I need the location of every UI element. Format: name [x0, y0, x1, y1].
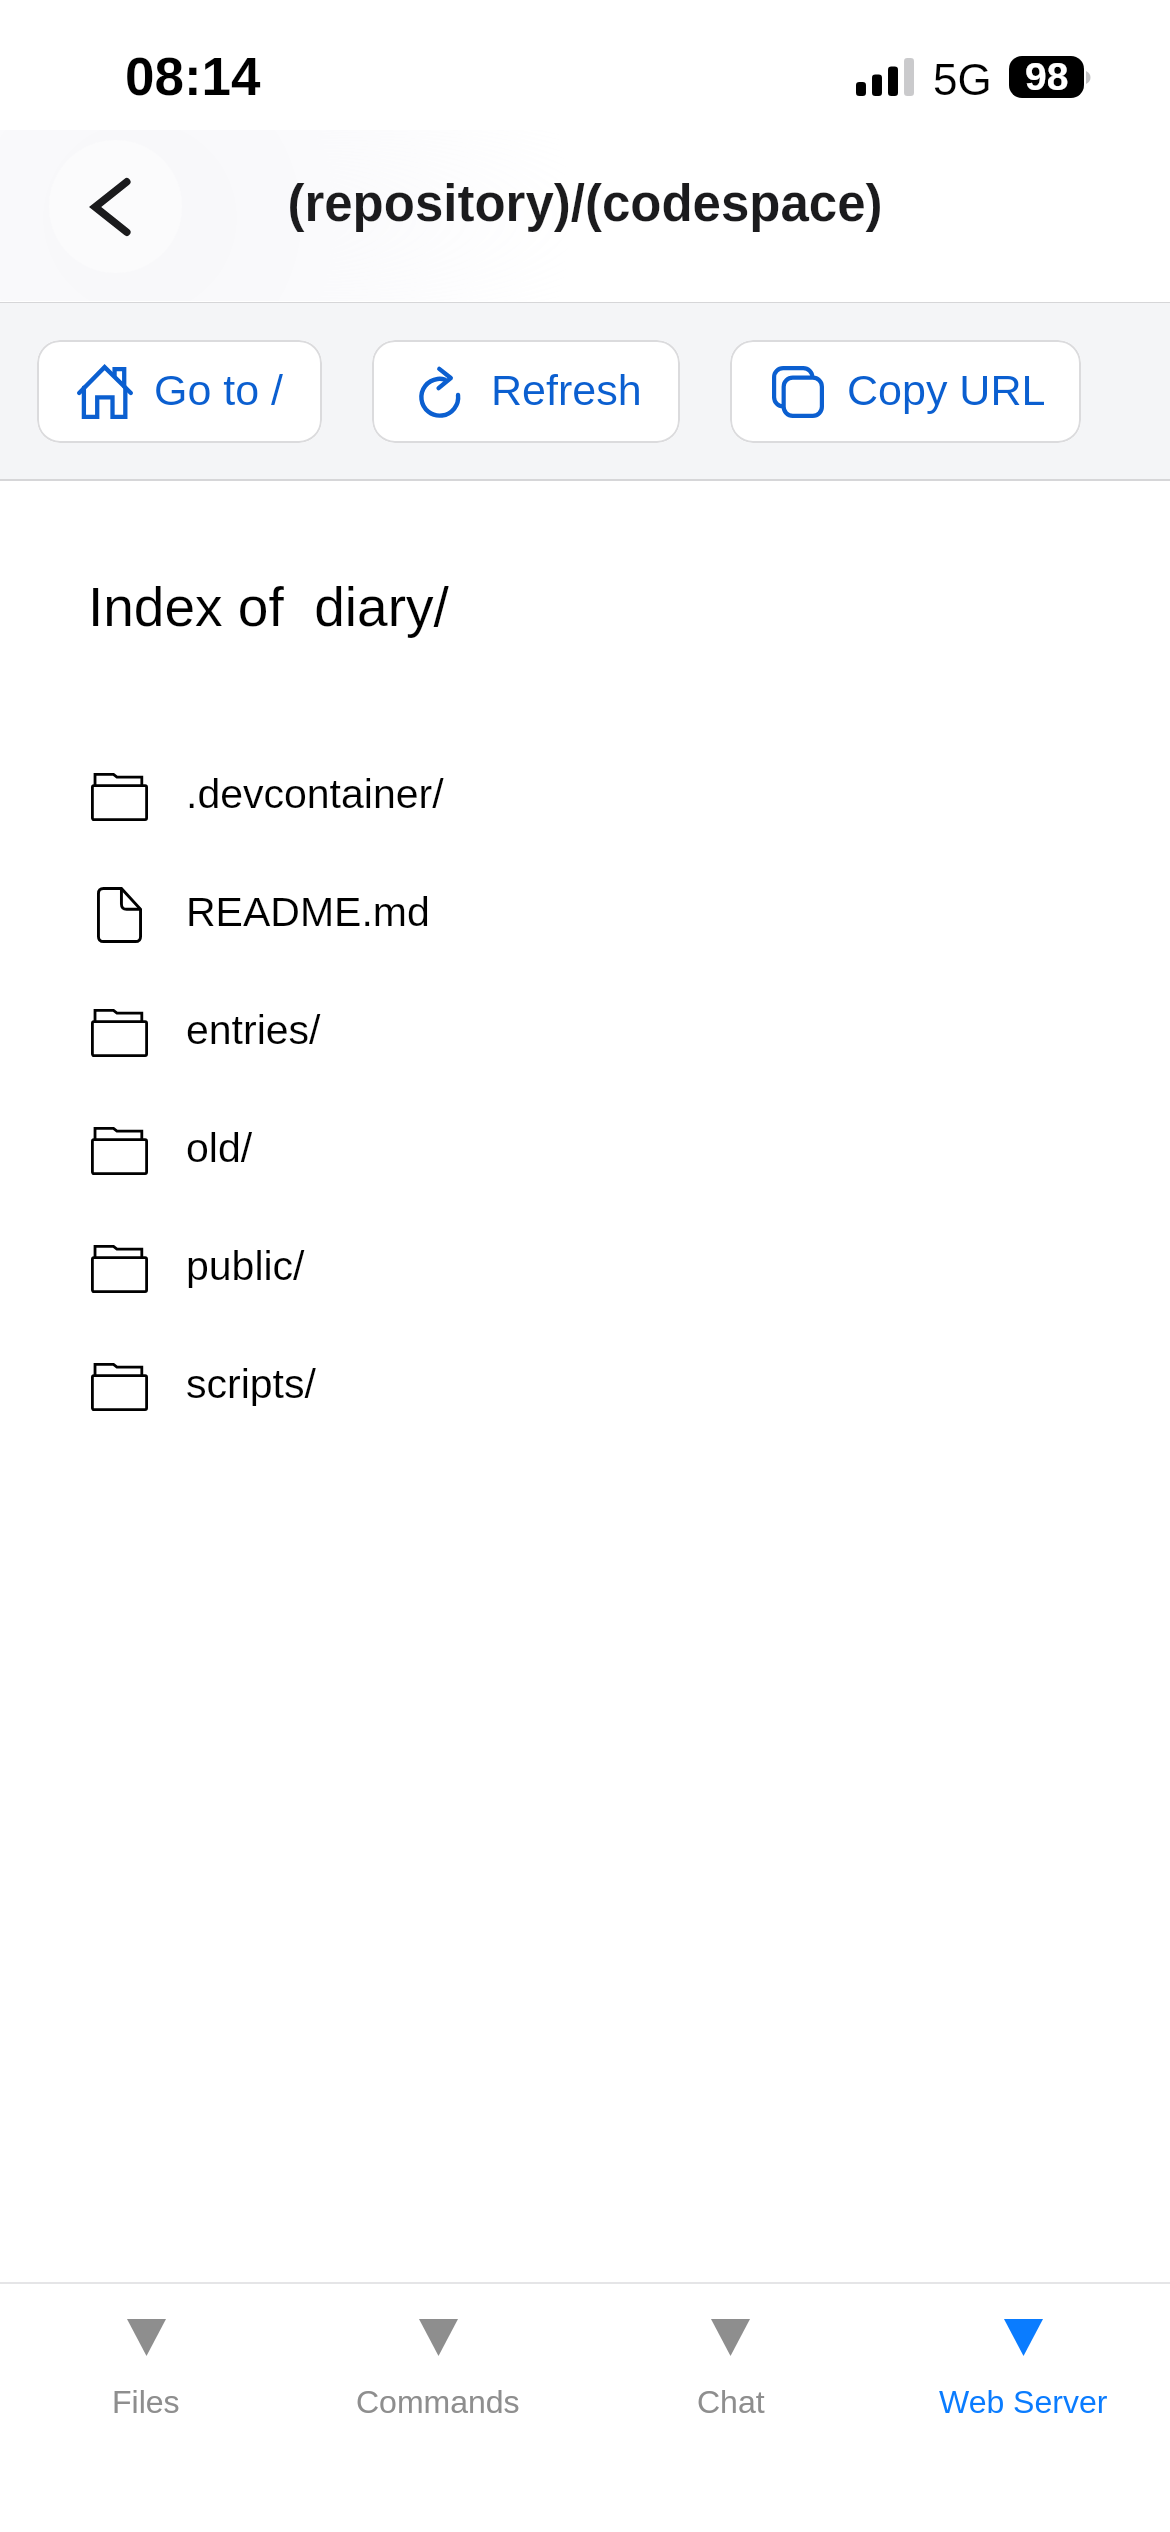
staticText: README.md [186, 889, 430, 935]
staticText: Index of diary/ [88, 576, 449, 637]
button[interactable]: entries/ [0, 974, 1170, 1092]
button[interactable]: scripts/ [0, 1328, 1170, 1446]
staticText: Go to / [154, 366, 284, 414]
staticText: Files [112, 2384, 180, 2420]
button[interactable]: old/ [0, 1092, 1170, 1210]
button[interactable]: Chat [584, 2284, 877, 2420]
button[interactable]: .devcontainer/ [0, 738, 1170, 856]
button[interactable]: Go to / [37, 340, 322, 443]
staticText: Refresh [491, 366, 642, 414]
staticText: public/ [186, 1243, 305, 1289]
staticText: .devcontainer/ [186, 771, 444, 817]
button[interactable]: Web Server [877, 2284, 1170, 2420]
button[interactable]: public/ [0, 1210, 1170, 1328]
staticText: Chat [697, 2384, 765, 2420]
staticText: scripts/ [186, 1361, 316, 1407]
button[interactable]: README.md [0, 856, 1170, 974]
staticText: Web Server [939, 2384, 1108, 2420]
staticText: 08:14 [125, 47, 261, 106]
button[interactable]: Files [0, 2284, 292, 2420]
button[interactable]: Refresh [372, 340, 680, 443]
staticText: 5G [933, 55, 992, 104]
staticText: (repository)/(codespace) [0, 175, 1170, 232]
button[interactable]: Copy URL [730, 340, 1081, 443]
staticText: 98 [1025, 56, 1069, 97]
staticText: old/ [186, 1125, 253, 1171]
button[interactable]: Back [49, 140, 182, 273]
staticText: entries/ [186, 1007, 321, 1053]
staticText: Copy URL [847, 366, 1046, 414]
staticText: Commands [356, 2384, 520, 2420]
button[interactable]: Commands [292, 2284, 584, 2420]
